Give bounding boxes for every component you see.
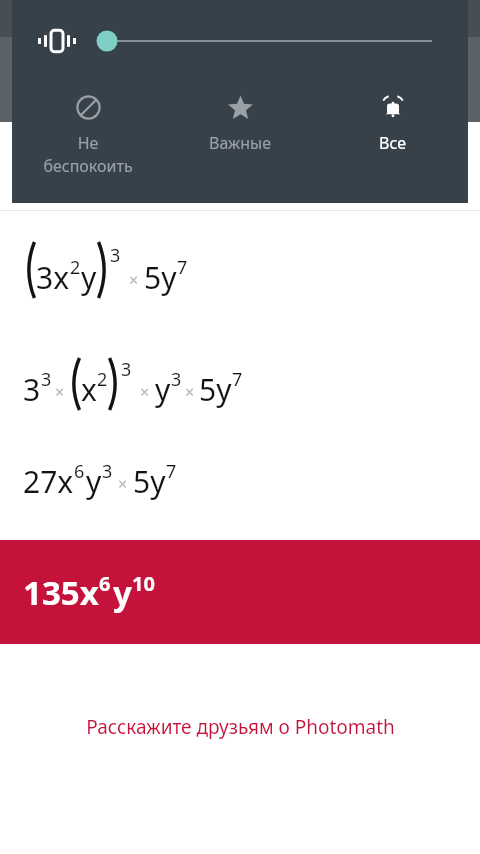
button[interactable]: 135x bbox=[0, 540, 480, 644]
staticText: 2 bbox=[70, 255, 81, 280]
staticText: 10 bbox=[132, 570, 155, 597]
staticText: × bbox=[140, 381, 150, 403]
staticText: Расскажите друзьям о Photomath bbox=[86, 714, 395, 740]
staticText: 3 bbox=[41, 367, 52, 392]
staticText: 3 bbox=[121, 357, 132, 382]
button[interactable]: Все bbox=[316, 82, 468, 203]
staticText: y bbox=[81, 257, 97, 298]
staticText: 7 bbox=[177, 255, 188, 280]
staticText: 3 bbox=[110, 243, 121, 268]
staticText: × bbox=[55, 381, 65, 403]
staticText: 7 bbox=[232, 367, 243, 392]
staticText: 3x bbox=[36, 257, 70, 298]
staticText: × bbox=[129, 269, 139, 291]
staticText: 3 bbox=[102, 459, 113, 484]
button[interactable]: Важные bbox=[164, 82, 316, 203]
staticText: y bbox=[113, 570, 132, 615]
staticText: 5y bbox=[199, 369, 232, 410]
staticText: 135x bbox=[23, 570, 99, 615]
staticText: 3 bbox=[23, 369, 41, 410]
staticText: 6 bbox=[74, 459, 85, 484]
staticText: × bbox=[185, 381, 195, 403]
staticText: y bbox=[155, 369, 171, 410]
staticText: 7 bbox=[166, 459, 177, 484]
button[interactable]: Ring volume bbox=[96, 24, 432, 58]
button[interactable]: Не беспокоить bbox=[12, 82, 164, 203]
staticText: Важные bbox=[209, 132, 271, 154]
staticText: 2 bbox=[97, 367, 108, 392]
staticText: 27x bbox=[23, 461, 74, 502]
staticText: Не беспокоить bbox=[43, 132, 133, 177]
staticText: y bbox=[86, 461, 102, 502]
button[interactable]: Расскажите друзьям о Photomath bbox=[0, 704, 480, 750]
staticText: 5y bbox=[133, 461, 166, 502]
staticText: Все bbox=[379, 132, 406, 154]
staticText: 6 bbox=[99, 570, 111, 597]
staticText: 5y bbox=[144, 257, 177, 298]
staticText: 3 bbox=[171, 367, 182, 392]
staticText: × bbox=[118, 473, 128, 495]
button[interactable]: Vibrate ringer mode bbox=[34, 18, 80, 64]
staticText: x bbox=[81, 369, 97, 410]
